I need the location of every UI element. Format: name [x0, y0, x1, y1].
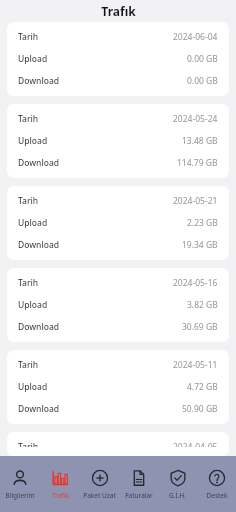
staticText: Upload	[18, 299, 48, 311]
staticText: Tarih	[18, 359, 39, 371]
staticText: Faturalar	[125, 491, 153, 500]
button[interactable]: Faturalar	[119, 456, 158, 512]
staticText: Upload	[18, 53, 48, 65]
button[interactable]: Bilgilerim	[0, 456, 40, 512]
staticText: 3.82 GB	[187, 299, 218, 311]
staticText: Tarih	[18, 31, 39, 43]
staticText: 114.79 GB	[177, 157, 218, 169]
staticText: 2024-06-04	[173, 31, 218, 43]
button[interactable]: Paket Uzat	[80, 456, 119, 512]
staticText: 2024-05-21	[173, 195, 218, 207]
staticText: Tarih	[18, 277, 39, 289]
staticText: Download	[18, 403, 60, 415]
staticText: 2024-05-11	[173, 359, 218, 371]
staticText: Tarih	[18, 195, 39, 207]
staticText: 50.90 GB	[182, 403, 218, 415]
button[interactable]: Trafik	[40, 456, 80, 512]
button[interactable]: Tarih	[7, 350, 229, 424]
staticText: Tarih	[18, 113, 39, 125]
staticText: Tarih	[18, 441, 39, 447]
staticText: 30.69 GB	[182, 321, 218, 333]
button[interactable]: Tarih	[7, 22, 229, 96]
button[interactable]: G.İ.H.	[158, 456, 197, 512]
staticText: Trafik	[52, 491, 69, 500]
staticText: Download	[18, 75, 60, 87]
button[interactable]: Destek	[197, 456, 236, 512]
button[interactable]: Tarih	[7, 186, 229, 260]
staticText: Destek	[206, 491, 228, 500]
button[interactable]: Tarih	[7, 268, 229, 342]
staticText: Paket Uzat	[83, 491, 116, 500]
staticText: 0.00 GB	[187, 53, 218, 65]
staticText: 2024-04-05	[173, 441, 218, 447]
staticText: Upload	[18, 381, 48, 393]
staticText: Bilgilerim	[5, 491, 35, 500]
staticText: 4.72 GB	[187, 381, 218, 393]
staticText: 13.48 GB	[182, 135, 218, 147]
staticText: Download	[18, 321, 60, 333]
staticText: G.İ.H.	[169, 491, 186, 500]
staticText: Trafık	[101, 3, 136, 19]
staticText: 0.00 GB	[187, 75, 218, 87]
staticText: 2024-05-24	[173, 113, 218, 125]
staticText: Download	[18, 157, 60, 169]
staticText: 2024-05-16	[173, 277, 218, 289]
staticText: Download	[18, 239, 60, 251]
staticText: 19.34 GB	[182, 239, 218, 251]
staticText: Upload	[18, 135, 48, 147]
button[interactable]: Tarih	[7, 104, 229, 178]
staticText: Upload	[18, 217, 48, 229]
staticText: 2.23 GB	[187, 217, 218, 229]
button[interactable]: Tarih	[7, 432, 229, 456]
